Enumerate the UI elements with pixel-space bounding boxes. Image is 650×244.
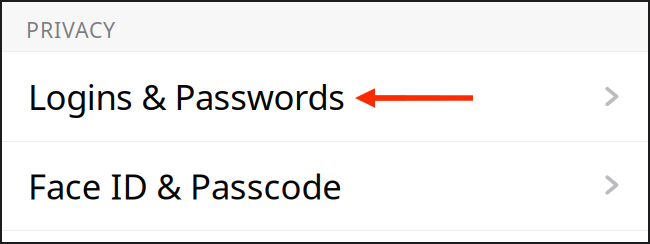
staticText: Logins & Passwords [28, 73, 345, 119]
staticText: PRIVACY [26, 16, 115, 44]
button[interactable]: Face ID & Passcode [2, 142, 648, 230]
staticText: Face ID & Passcode [28, 163, 342, 209]
button[interactable]: Logins & Passwords [2, 52, 648, 141]
